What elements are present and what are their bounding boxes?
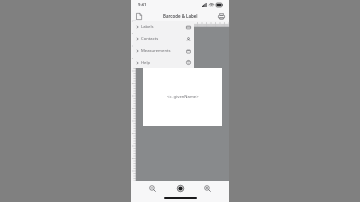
button[interactable]: Fit to screen (174, 182, 187, 195)
staticText: Help (141, 60, 186, 66)
button[interactable]: Print (216, 11, 226, 21)
staticText: Contacts (141, 36, 186, 42)
button[interactable]: Contacts (133, 33, 194, 45)
button[interactable]: Measurements (133, 45, 194, 57)
button[interactable]: Labels (133, 21, 194, 33)
staticText: Measurements (141, 48, 186, 54)
staticText: Labels (141, 24, 186, 30)
button[interactable]: Zoom in (201, 182, 214, 195)
button[interactable]: Document (134, 11, 144, 21)
staticText: 9:41 (138, 2, 147, 8)
staticText: Barcode & Label (163, 13, 198, 19)
staticText: <c. givenName> (167, 94, 199, 100)
button[interactable]: Zoom out (146, 182, 159, 195)
button[interactable]: Help (133, 57, 194, 68)
